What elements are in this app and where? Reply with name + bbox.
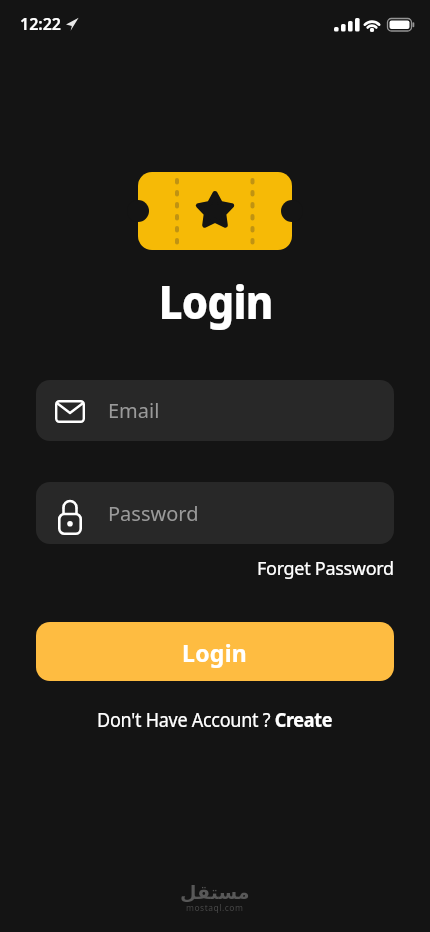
- staticText: mostaql.com: [186, 902, 244, 914]
- button[interactable]: Don't Have Account ? Create: [97, 706, 333, 733]
- staticText: مستقل: [180, 881, 250, 903]
- button[interactable]: Password: [36, 482, 394, 544]
- staticText: Login: [159, 270, 273, 333]
- staticText: 12:22: [20, 13, 62, 35]
- button[interactable]: Email: [36, 380, 394, 441]
- button[interactable]: Login: [36, 622, 394, 681]
- button[interactable]: Forget Password: [257, 556, 394, 581]
- staticText: Password: [108, 500, 199, 527]
- staticText: Login: [182, 637, 248, 668]
- staticText: Email: [108, 397, 160, 424]
